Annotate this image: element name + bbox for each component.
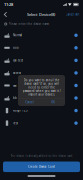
staticText: Normal xyxy=(13,33,22,37)
button[interactable]: Test xyxy=(0,117,83,129)
staticText: Please enter the device name xyxy=(9,22,50,26)
button[interactable]: Create Device Card xyxy=(3,162,80,172)
staticText: xia api 123 xyxy=(13,109,28,112)
staticText: 11:28 xyxy=(4,2,13,7)
staticText: OK xyxy=(51,100,55,104)
staticText: Cancel All xyxy=(65,13,79,16)
staticText: The device is already added to the devic… xyxy=(10,154,72,158)
staticText: Do you want to annul the device card? If… xyxy=(22,78,60,96)
button[interactable]: ooo xyxy=(0,42,83,54)
button[interactable]: OK xyxy=(41,98,65,106)
staticText: aaa xyxy=(13,84,16,87)
button[interactable]: xia api 123 xyxy=(0,104,83,117)
staticText: can test xyxy=(13,59,23,62)
button[interactable]: Back xyxy=(0,9,11,20)
staticText: ooo xyxy=(13,46,19,50)
button[interactable]: Normal xyxy=(0,29,83,42)
staticText: Cancel xyxy=(25,100,34,104)
button[interactable]: can test xyxy=(0,54,83,67)
staticText: Test xyxy=(13,121,18,125)
staticText: xx test xyxy=(13,71,21,75)
button[interactable]: aaa xyxy=(0,79,83,92)
button[interactable]: bb test xyxy=(0,92,83,104)
button[interactable]: Cancel xyxy=(18,98,41,106)
staticText: Create Device Card xyxy=(28,165,55,168)
button[interactable]: xx test xyxy=(0,67,83,79)
staticText: Select Device(8) xyxy=(27,12,55,17)
staticText: bb test xyxy=(13,96,23,100)
button[interactable]: Cancel All xyxy=(63,9,81,20)
